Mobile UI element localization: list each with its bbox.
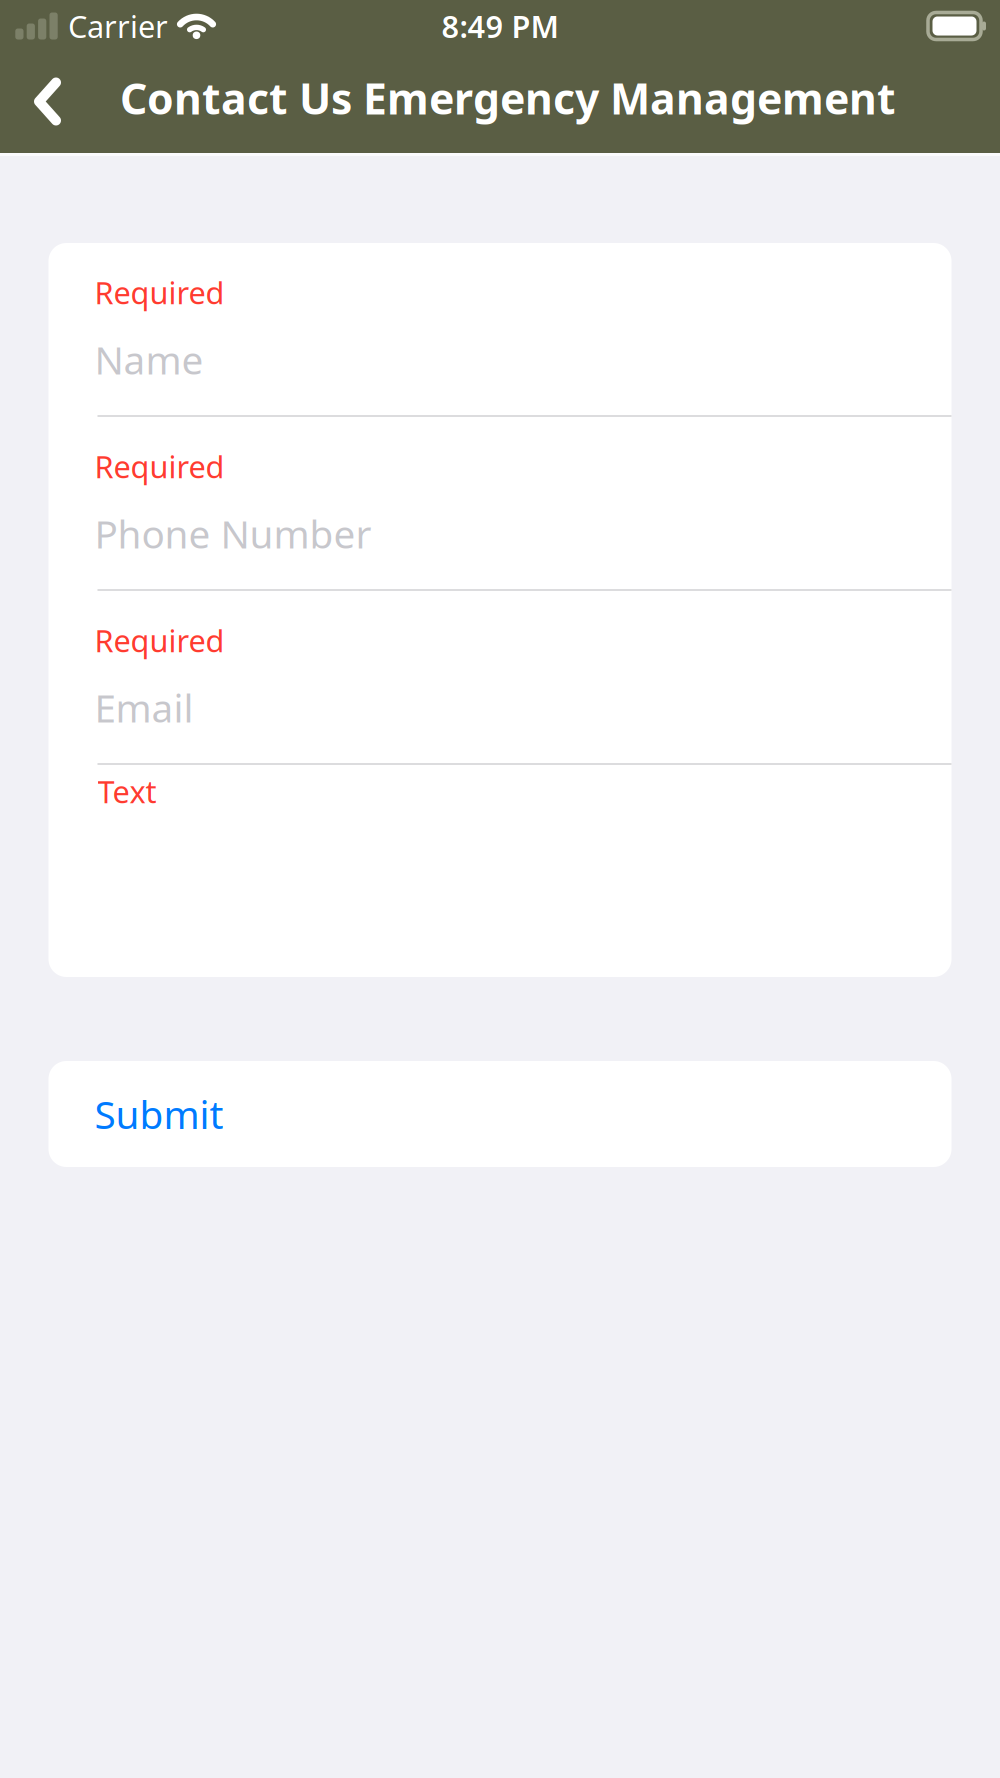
button[interactable]: Required: [97, 591, 951, 763]
staticText: Required: [94, 272, 224, 313]
button[interactable]: Back: [18, 54, 77, 149]
staticText: Name: [94, 334, 203, 385]
button[interactable]: Required: [97, 243, 951, 415]
staticText: Required: [94, 446, 224, 487]
staticText: 8:49 PM: [441, 6, 558, 46]
button[interactable]: Submit: [48, 1061, 951, 1167]
staticText: Phone Number: [94, 508, 371, 559]
staticText: Contact Us Emergency Management: [120, 70, 896, 126]
staticText: Required: [94, 620, 224, 661]
staticText: Carrier: [68, 6, 168, 46]
staticText: Text: [97, 771, 156, 812]
button[interactable]: Required: [97, 417, 951, 589]
staticText: Email: [94, 682, 193, 733]
staticText: Submit: [94, 1088, 223, 1140]
